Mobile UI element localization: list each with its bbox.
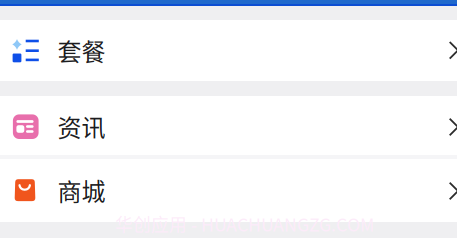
staticText: 商城 xyxy=(57,173,105,208)
button[interactable]: 套餐 xyxy=(0,20,457,81)
button[interactable]: 资讯 xyxy=(0,96,457,155)
button[interactable]: 商城 xyxy=(0,159,457,222)
staticText: 资讯 xyxy=(57,109,105,144)
staticText: 华创应用 - HUACHUANGZG.COM xyxy=(115,211,374,237)
staticText: 套餐 xyxy=(57,33,105,68)
